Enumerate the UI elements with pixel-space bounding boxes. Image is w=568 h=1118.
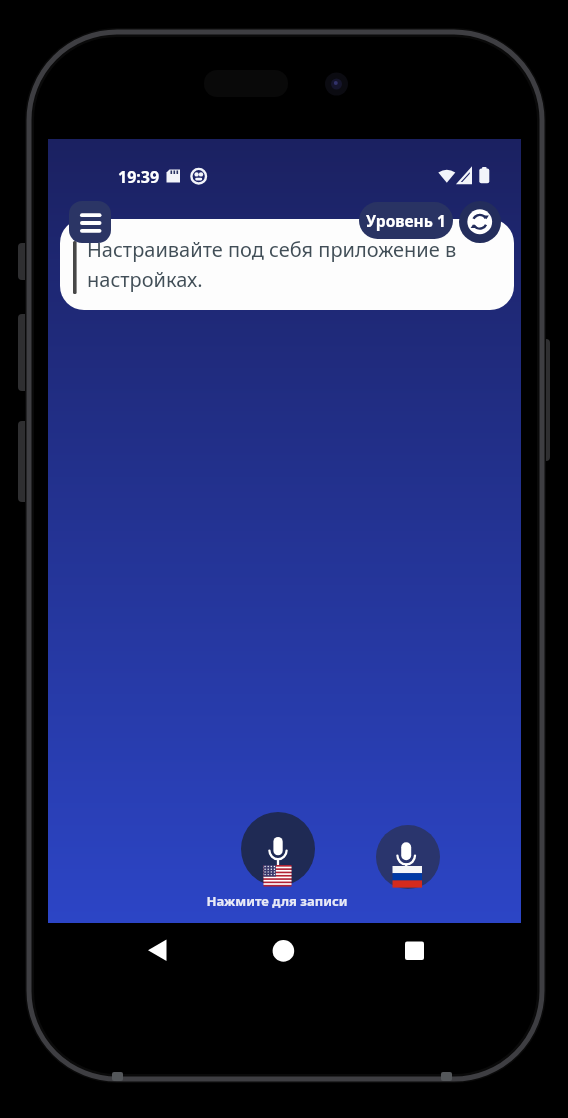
- button[interactable]: [139, 933, 175, 968]
- staticText: Настраивайте под себя приложение в настр…: [87, 236, 457, 293]
- staticText: 19:39: [118, 166, 160, 188]
- staticText: Нажмите для записи: [167, 892, 387, 910]
- button[interactable]: [397, 933, 433, 968]
- button[interactable]: [69, 201, 111, 243]
- button[interactable]: [459, 201, 501, 243]
- button[interactable]: [266, 933, 302, 968]
- button[interactable]: [376, 825, 440, 889]
- button[interactable]: [241, 812, 315, 886]
- button[interactable]: Уровень 1: [359, 202, 453, 239]
- staticText: Уровень 1: [366, 210, 446, 231]
